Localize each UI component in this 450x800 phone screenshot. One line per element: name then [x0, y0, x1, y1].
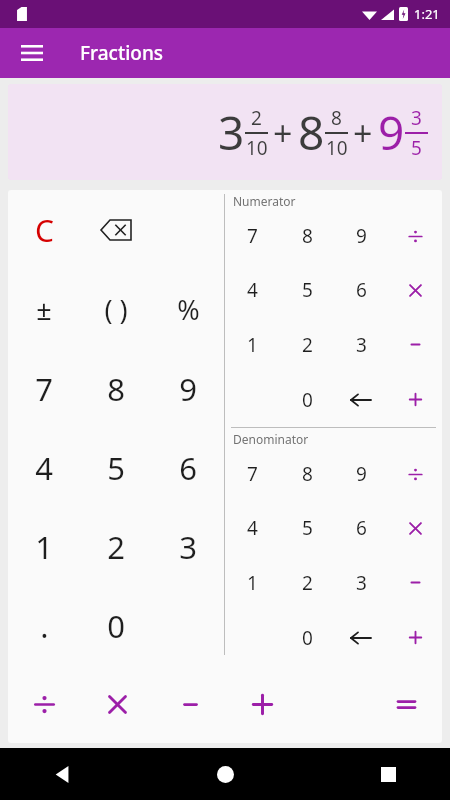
staticText: 9	[378, 101, 405, 164]
staticText: 0	[302, 387, 313, 413]
button[interactable]: Home	[203, 752, 247, 796]
button[interactable]: Multiply	[81, 665, 154, 743]
button[interactable]: Add	[226, 665, 298, 743]
staticText: 9	[356, 461, 367, 487]
staticText: 0	[107, 605, 125, 647]
button[interactable]: 1	[8, 507, 80, 586]
button[interactable]: 4	[225, 501, 280, 555]
button[interactable]: ±	[8, 270, 80, 349]
button[interactable]: 8	[80, 349, 152, 428]
button[interactable]: Divide	[8, 665, 81, 743]
staticText: 8	[298, 101, 325, 164]
button[interactable]: 1	[225, 317, 280, 372]
button[interactable]: Multiply	[388, 501, 442, 555]
button[interactable]: 8	[280, 209, 334, 263]
button[interactable]: 7	[8, 349, 80, 428]
button[interactable]: Backspace	[80, 190, 152, 270]
staticText: 6	[356, 277, 367, 303]
staticText: 3	[411, 105, 422, 131]
staticText: ±	[36, 291, 52, 328]
button[interactable]: 0	[280, 372, 334, 427]
button[interactable]: Subtract	[388, 317, 442, 372]
staticText: 3	[356, 332, 367, 358]
staticText: 0	[302, 625, 313, 651]
button[interactable]: C	[8, 190, 80, 270]
button[interactable]: 4	[225, 263, 280, 317]
staticText: 4	[247, 277, 258, 303]
button[interactable]: 3	[334, 317, 388, 372]
staticText: 8	[107, 368, 125, 410]
staticText: 1	[247, 332, 258, 358]
button[interactable]: 5	[280, 263, 334, 317]
staticText: 6	[179, 447, 197, 489]
button[interactable]: Subtract	[154, 665, 226, 743]
button[interactable]: 6	[334, 501, 388, 555]
staticText: 3	[218, 101, 245, 164]
staticText: 6	[356, 515, 367, 541]
button[interactable]: ( )	[80, 270, 152, 349]
button[interactable]: 2	[80, 507, 152, 586]
staticText: 5	[107, 447, 125, 489]
button[interactable]: 7	[225, 209, 280, 263]
staticText: 7	[247, 223, 258, 249]
button[interactable]: Backspace	[334, 372, 388, 427]
button[interactable]: 0	[280, 610, 334, 665]
button[interactable]: 1	[225, 555, 280, 610]
staticText: +	[353, 110, 373, 156]
button[interactable]: 3	[8, 84, 442, 180]
staticText: 8	[302, 461, 313, 487]
button[interactable]: 0	[80, 586, 152, 665]
staticText: 8	[302, 223, 313, 249]
staticText: ( )	[104, 291, 128, 328]
staticText: .	[40, 605, 49, 647]
staticText: 2	[251, 105, 262, 131]
button[interactable]: Subtract	[388, 555, 442, 610]
staticText: 8	[331, 105, 342, 131]
button[interactable]: Add	[388, 610, 442, 665]
button[interactable]: 9	[334, 209, 388, 263]
button[interactable]: 6	[152, 428, 224, 507]
button[interactable]: Open navigation menu	[12, 33, 52, 73]
button[interactable]: 4	[8, 428, 80, 507]
staticText: 1	[35, 526, 53, 568]
staticText: 5	[302, 515, 313, 541]
button[interactable]: Recent apps	[366, 752, 410, 796]
button[interactable]: 7	[225, 447, 280, 501]
button[interactable]: 6	[334, 263, 388, 317]
button[interactable]: %	[152, 270, 224, 349]
button[interactable]: 8	[280, 447, 334, 501]
button[interactable]: 5	[280, 501, 334, 555]
staticText: 7	[247, 461, 258, 487]
button[interactable]: 3	[334, 555, 388, 610]
button[interactable]: Equals	[370, 665, 442, 743]
button[interactable]: Divide	[388, 209, 442, 263]
button[interactable]: 9	[152, 349, 224, 428]
staticText: 2	[302, 332, 313, 358]
staticText: 5	[411, 135, 422, 161]
staticText: 2	[107, 526, 125, 568]
button[interactable]: .	[8, 586, 80, 665]
staticText: 4	[247, 515, 258, 541]
button[interactable]: 2	[280, 317, 334, 372]
staticText: 1:21	[414, 5, 440, 23]
staticText: Fractions	[80, 40, 164, 66]
button[interactable]: 3	[152, 507, 224, 586]
staticText: %	[177, 291, 200, 328]
staticText: 3	[356, 570, 367, 596]
button[interactable]: Add	[388, 372, 442, 427]
staticText: +	[273, 110, 293, 156]
staticText: 10	[246, 135, 268, 161]
staticText: 9	[356, 223, 367, 249]
button[interactable]: Backspace	[334, 610, 388, 665]
button[interactable]: Multiply	[388, 263, 442, 317]
button[interactable]: Divide	[388, 447, 442, 501]
staticText: 4	[35, 447, 53, 489]
staticText: 1	[247, 570, 258, 596]
button[interactable]: 5	[80, 428, 152, 507]
button[interactable]: Back	[40, 752, 84, 796]
button[interactable]: 2	[280, 555, 334, 610]
staticText: 7	[35, 368, 53, 410]
staticText: 5	[302, 277, 313, 303]
button[interactable]: 9	[334, 447, 388, 501]
staticText: 3	[179, 526, 197, 568]
